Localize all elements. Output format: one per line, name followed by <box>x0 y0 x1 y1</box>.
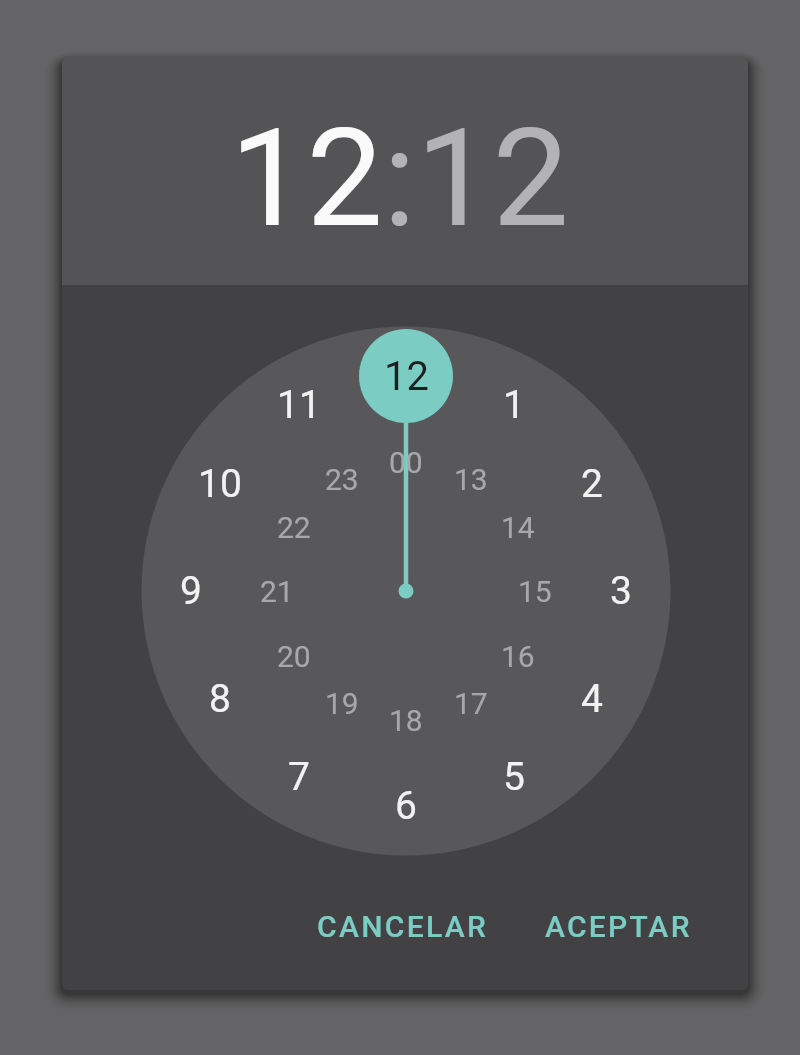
staticText: 1 <box>503 382 525 428</box>
staticText: : <box>383 99 416 258</box>
staticText: 13 <box>454 462 488 497</box>
staticText: 22 <box>277 510 311 545</box>
staticText: 19 <box>325 686 359 721</box>
staticText: 5 <box>503 754 525 800</box>
staticText: 8 <box>209 676 231 722</box>
staticText: 23 <box>325 462 359 497</box>
staticText: CANCELAR <box>317 909 489 944</box>
staticText: 18 <box>389 703 423 738</box>
staticText: 11 <box>277 382 321 428</box>
staticText: 9 <box>180 568 202 614</box>
staticText: 16 <box>501 639 535 674</box>
staticText: 20 <box>277 639 311 674</box>
staticText: 12 <box>384 353 429 400</box>
button[interactable]: 12 <box>416 99 569 258</box>
staticText: 17 <box>454 686 488 721</box>
staticText: 7 <box>288 754 310 800</box>
staticText: 2 <box>581 461 603 507</box>
staticText: 14 <box>501 510 535 545</box>
staticText: 6 <box>395 783 417 829</box>
staticText: 4 <box>581 676 603 722</box>
button[interactable]: ACEPTAR <box>528 890 708 962</box>
staticText: ACEPTAR <box>545 909 692 944</box>
staticText: 3 <box>610 568 632 614</box>
button[interactable]: 12 <box>230 99 383 258</box>
staticText: 00 <box>389 445 423 480</box>
staticText: 10 <box>198 461 242 507</box>
staticText: 21 <box>260 574 294 609</box>
button[interactable]: CANCELAR <box>298 890 508 962</box>
staticText: 15 <box>518 574 552 609</box>
